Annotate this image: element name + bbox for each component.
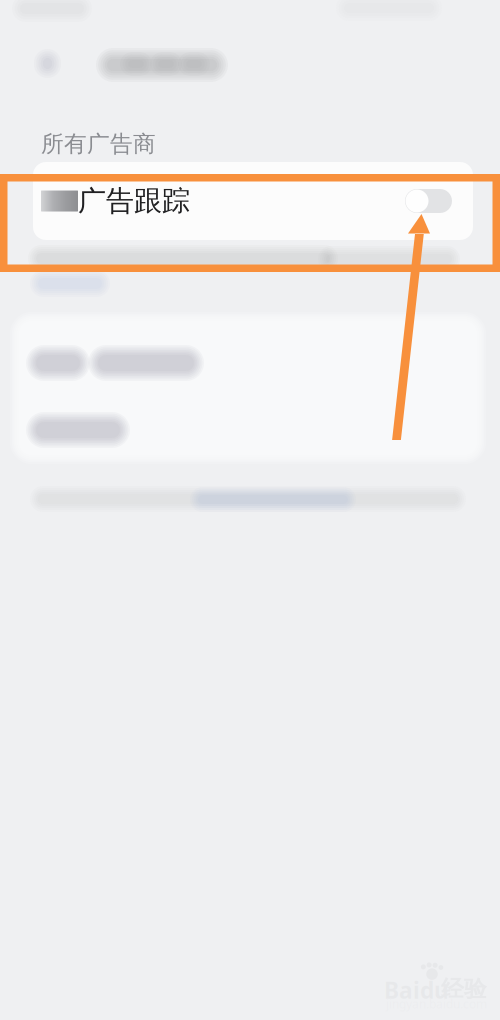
staticText: 所有广告商: [41, 130, 156, 158]
staticText: 经验: [441, 975, 487, 1003]
button[interactable]: 广告跟踪: [33, 162, 473, 240]
staticText: 广告跟踪: [78, 184, 190, 218]
staticText: Baidu: [384, 975, 449, 1005]
